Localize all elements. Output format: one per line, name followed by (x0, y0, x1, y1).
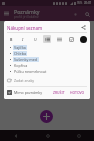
button[interactable]: Sdílet (80, 24, 87, 31)
button[interactable]: Vajíčka (10, 45, 87, 50)
button[interactable]: Zpět (0, 130, 32, 141)
button[interactable]: Zaškrtávací seznam (67, 35, 75, 43)
button[interactable]: HOTOVO (68, 89, 87, 96)
staticText: profil: jiri (lokální) (14, 15, 39, 19)
button[interactable]: Hledat (83, 10, 91, 18)
staticText: I (22, 37, 24, 42)
button[interactable]: Kurzíva (19, 35, 27, 43)
button[interactable]: Chleba (10, 51, 87, 56)
staticText: 20:07 (84, 1, 92, 5)
button[interactable]: Podtržení (31, 35, 39, 43)
staticText: ZRUŠIT (53, 90, 65, 95)
button[interactable]: Tučné (7, 35, 15, 43)
button[interactable]: Mimo poznámky (7, 90, 51, 95)
button[interactable]: Barva (79, 35, 87, 43)
staticText: Kopřiva (14, 63, 28, 68)
staticText: HOTOVO (70, 90, 85, 95)
staticText: Chleba (14, 51, 26, 56)
button[interactable]: Filtr (72, 11, 78, 17)
staticText: U (34, 37, 37, 42)
button[interactable]: Domů (32, 130, 63, 141)
button[interactable]: Nová poznámka (40, 110, 53, 123)
staticText: Půlku neomrknout (14, 69, 47, 74)
button[interactable]: Půlku neomrknout (10, 69, 87, 74)
staticText: Zadat znaky (14, 78, 35, 83)
staticText: Sušenky med (14, 57, 38, 62)
button[interactable]: ZRUŠIT (51, 89, 67, 96)
button[interactable]: Kopřiva (10, 63, 87, 68)
staticText: Mimo poznámky (14, 90, 43, 95)
staticText: B (10, 37, 13, 42)
button[interactable]: Zadat znaky (7, 78, 87, 83)
button[interactable]: Zarovnání (55, 35, 63, 43)
staticText: Poznámky (14, 8, 40, 15)
button[interactable]: Menu (3, 10, 10, 17)
staticText: 95% (77, 1, 83, 5)
button[interactable]: Přehled (63, 130, 94, 141)
button[interactable]: Sušenky med (10, 57, 87, 62)
staticText: Vajíčka (14, 45, 26, 50)
staticText: Nákupní seznam (7, 25, 80, 31)
button[interactable]: Odrážky (43, 35, 51, 43)
